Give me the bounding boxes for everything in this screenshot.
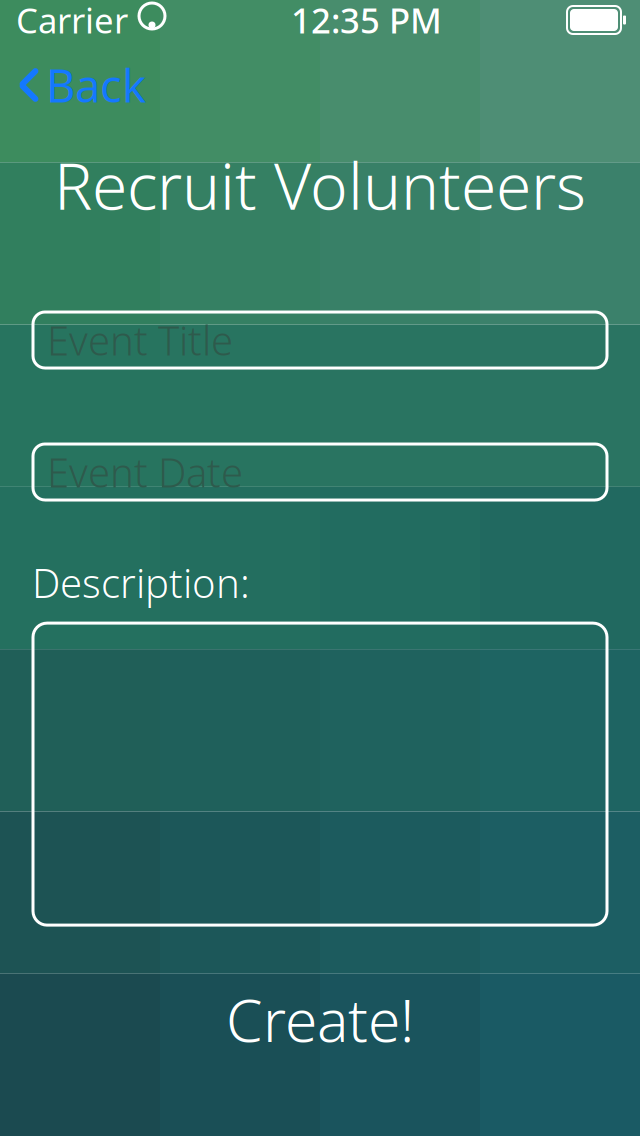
staticText: Back: [46, 55, 146, 115]
staticText: Event Title: [47, 313, 233, 366]
button[interactable]: Event Date: [33, 444, 607, 500]
staticText: Carrier: [16, 0, 128, 43]
button[interactable]: Back: [0, 49, 146, 121]
button[interactable]: Create!: [33, 987, 607, 1051]
staticText: 12:35 PM: [291, 0, 442, 43]
button[interactable]: Event Title: [33, 312, 607, 368]
staticText: Recruit Volunteers: [54, 142, 586, 227]
staticText: Create!: [226, 980, 414, 1058]
staticText: Event Date: [47, 445, 243, 498]
staticText: Description:: [32, 556, 250, 609]
